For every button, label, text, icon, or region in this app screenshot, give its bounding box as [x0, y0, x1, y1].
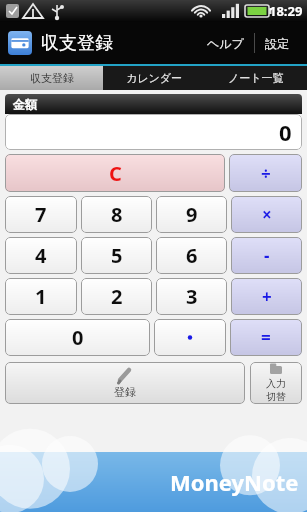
staticText: 金額 — [13, 97, 37, 112]
staticText: 4 — [35, 242, 47, 269]
button[interactable]: 入力 — [250, 362, 302, 404]
staticText: + — [262, 285, 272, 308]
staticText: C — [109, 160, 122, 187]
staticText: 1 — [35, 283, 47, 310]
staticText: 収支登録 — [30, 71, 74, 85]
button[interactable]: Divide — [229, 154, 302, 192]
button[interactable]: Equals — [230, 319, 302, 356]
button[interactable]: 8 — [81, 196, 152, 233]
staticText: ÷ — [261, 162, 271, 185]
staticText: 設定 — [265, 36, 289, 51]
staticText: 18:29 — [269, 2, 303, 20]
staticText: ノート一覧 — [228, 71, 284, 85]
staticText: × — [262, 203, 272, 226]
staticText: 9 — [186, 201, 198, 228]
staticText: 登録 — [114, 385, 136, 399]
button[interactable]: Add — [231, 278, 302, 315]
button[interactable]: 1 — [5, 278, 77, 315]
staticText: 収支登録 — [41, 32, 113, 55]
staticText: 5 — [111, 242, 123, 269]
button[interactable]: 収支登録 — [0, 66, 103, 90]
button[interactable]: ノート一覧 — [205, 66, 307, 90]
button[interactable]: 7 — [5, 196, 77, 233]
button[interactable]: ヘルプ — [197, 30, 254, 57]
button[interactable]: 登録 — [5, 362, 245, 404]
staticText: 入力 — [266, 377, 286, 390]
staticText: 3 — [186, 283, 198, 310]
staticText: = — [261, 326, 271, 349]
staticText: - — [264, 244, 270, 267]
staticText: ヘルプ — [207, 36, 244, 51]
button[interactable]: 設定 — [255, 30, 299, 57]
button[interactable]: Subtract — [231, 237, 302, 274]
button[interactable]: C — [5, 154, 225, 192]
staticText: MoneyNote — [170, 467, 299, 497]
button[interactable]: Decimal point — [154, 319, 226, 356]
button[interactable]: 2 — [81, 278, 152, 315]
staticText: 8 — [111, 201, 123, 228]
button[interactable]: 0 — [5, 319, 150, 356]
button[interactable]: Multiply — [231, 196, 302, 233]
button[interactable]: 3 — [156, 278, 227, 315]
staticText: 切替 — [266, 390, 286, 403]
staticText: 0 — [72, 324, 84, 351]
button[interactable]: 6 — [156, 237, 227, 274]
button[interactable]: 4 — [5, 237, 77, 274]
button[interactable]: 9 — [156, 196, 227, 233]
button[interactable]: カレンダー — [103, 66, 205, 90]
staticText: 7 — [35, 201, 47, 228]
button[interactable]: 0 — [5, 114, 292, 150]
staticText: 0 — [279, 117, 292, 147]
staticText: 2 — [111, 283, 123, 310]
staticText: カレンダー — [126, 71, 183, 85]
staticText: 6 — [186, 242, 198, 269]
button[interactable]: 5 — [81, 237, 152, 274]
